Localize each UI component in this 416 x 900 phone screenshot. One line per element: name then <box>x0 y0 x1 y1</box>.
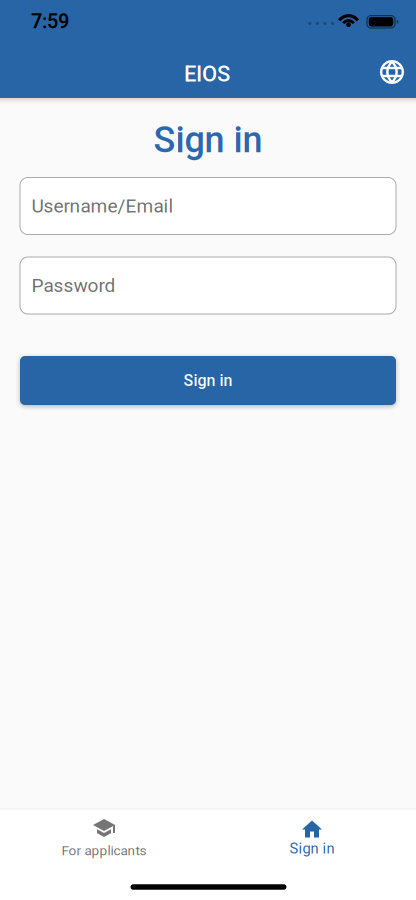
button[interactable]: Password <box>20 257 396 314</box>
staticText: 7:59 <box>31 10 69 33</box>
staticText: Username/Email <box>31 195 173 217</box>
button[interactable]: Username/Email <box>20 177 396 234</box>
staticText: Password <box>31 274 115 297</box>
button[interactable]: Language <box>370 50 414 94</box>
staticText: EIOS <box>184 61 230 87</box>
staticText: Sign in <box>183 371 232 390</box>
button[interactable]: Sign in <box>20 356 396 405</box>
staticText: For applicants <box>61 843 146 859</box>
staticText: Sign in <box>289 840 334 857</box>
button[interactable]: For applicants <box>0 809 208 871</box>
button[interactable]: Sign in <box>208 809 416 871</box>
staticText: Sign in <box>153 119 262 161</box>
